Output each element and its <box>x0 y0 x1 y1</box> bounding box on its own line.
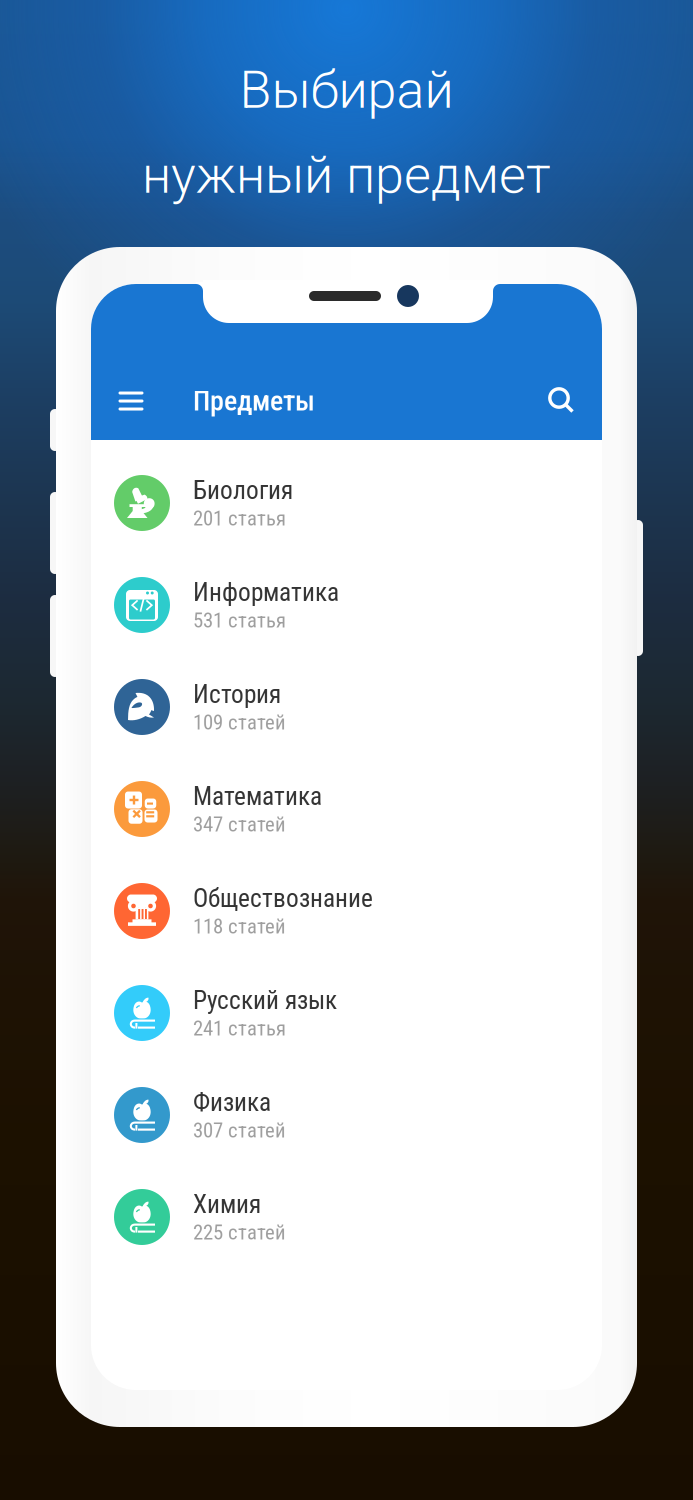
button[interactable]: Menu <box>107 377 155 425</box>
staticText: 201 статья <box>193 506 286 530</box>
staticText: Предметы <box>193 385 315 417</box>
staticText: 241 статья <box>193 1016 286 1040</box>
button[interactable]: История <box>91 656 602 758</box>
staticText: Обществознание <box>193 883 373 913</box>
button[interactable]: Search <box>538 377 586 425</box>
staticText: Математика <box>193 781 322 811</box>
button[interactable]: Русский язык <box>91 962 602 1064</box>
button[interactable]: Биология <box>91 452 602 554</box>
staticText: нужный предмет <box>142 144 551 205</box>
button[interactable]: Информатика <box>91 554 602 656</box>
button[interactable]: Физика <box>91 1064 602 1166</box>
staticText: 347 статей <box>193 812 286 836</box>
staticText: 307 статей <box>193 1118 286 1142</box>
staticText: Информатика <box>193 577 339 607</box>
button[interactable]: Математика <box>91 758 602 860</box>
button[interactable]: Химия <box>91 1166 602 1268</box>
staticText: 225 статей <box>193 1220 286 1244</box>
button[interactable]: Обществознание <box>91 860 602 962</box>
staticText: Выбирай <box>239 59 453 120</box>
staticText: Русский язык <box>193 985 337 1015</box>
staticText: Биология <box>193 475 293 505</box>
staticText: Физика <box>193 1087 271 1117</box>
staticText: История <box>193 679 281 709</box>
staticText: 118 статей <box>193 914 286 938</box>
staticText: 531 статья <box>193 608 286 632</box>
staticText: Химия <box>193 1189 261 1219</box>
staticText: 109 статей <box>193 710 286 734</box>
